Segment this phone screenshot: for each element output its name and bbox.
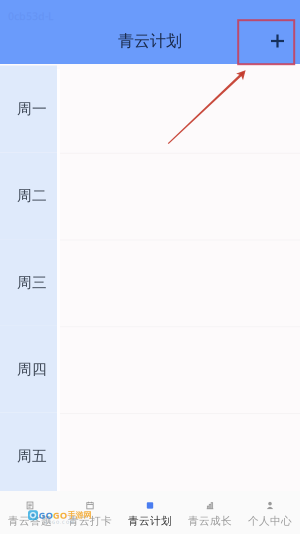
staticText: 周一	[17, 100, 47, 118]
button[interactable]: 周二	[0, 152, 57, 239]
button[interactable]: Add	[255, 18, 300, 64]
staticText: 周二	[17, 187, 47, 205]
button[interactable]: 个人中心	[240, 491, 300, 534]
staticText: 青云计划	[128, 514, 172, 527]
button[interactable]: 周三	[0, 239, 57, 326]
staticText: 手游网	[67, 510, 91, 520]
staticText: G O G O . C O M	[44, 519, 74, 525]
button[interactable]: 周五	[0, 413, 57, 499]
staticText: 周四	[17, 360, 47, 378]
staticText: 周五	[17, 447, 47, 465]
button[interactable]: 青云计划	[120, 491, 180, 534]
button[interactable]: 青云成长	[180, 491, 240, 534]
staticText: GO	[38, 509, 52, 521]
button[interactable]: 青云打卡	[60, 491, 120, 534]
staticText: 青云打卡	[68, 514, 112, 527]
staticText: 青云答题	[8, 514, 52, 527]
button[interactable]: 周四	[0, 326, 57, 413]
staticText: 周三	[17, 273, 47, 291]
button[interactable]: 周一	[0, 65, 57, 152]
staticText: 青云成长	[188, 514, 232, 527]
staticText: 个人中心	[248, 514, 292, 527]
staticText: GO	[53, 509, 67, 521]
staticText: 青云计划	[118, 31, 182, 51]
button[interactable]: 青云答题	[0, 491, 60, 534]
